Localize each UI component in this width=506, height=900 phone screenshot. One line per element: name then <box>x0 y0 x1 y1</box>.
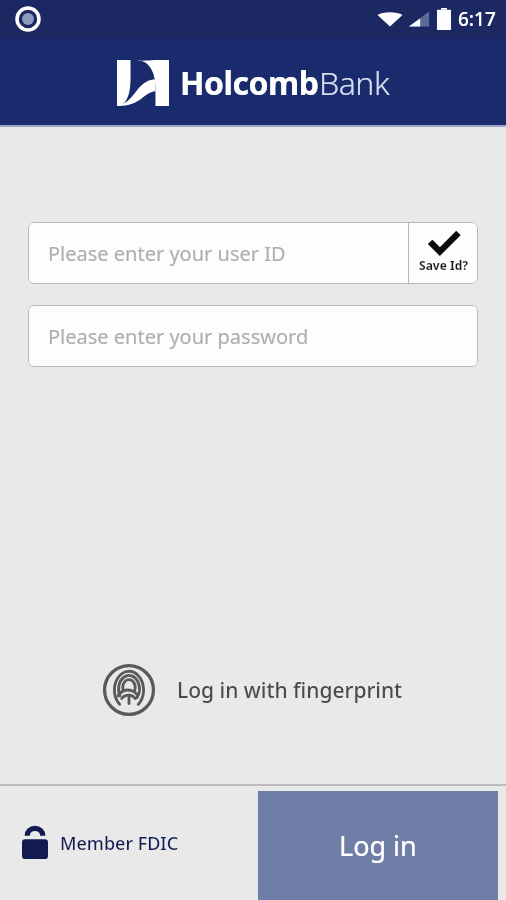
staticText: Log in with fingerprint <box>177 676 403 705</box>
staticText: Log in <box>339 827 417 864</box>
button[interactable]: Please enter your password <box>28 305 478 367</box>
staticText: Bank <box>319 61 390 105</box>
staticText: Member FDIC <box>60 831 179 856</box>
button[interactable]: Member FDIC <box>22 827 179 859</box>
staticText: Please enter your user ID <box>48 240 286 267</box>
staticText: Save Id? <box>419 257 468 273</box>
staticText: Please enter your password <box>48 323 309 350</box>
staticText: 6:17 <box>458 6 496 32</box>
staticText: Holcomb <box>180 61 319 105</box>
button[interactable]: Save Id <box>409 222 478 284</box>
button[interactable]: Please enter your user ID <box>28 222 408 284</box>
button[interactable]: Log in <box>258 791 498 900</box>
button[interactable]: Log in with fingerprint <box>95 658 411 722</box>
